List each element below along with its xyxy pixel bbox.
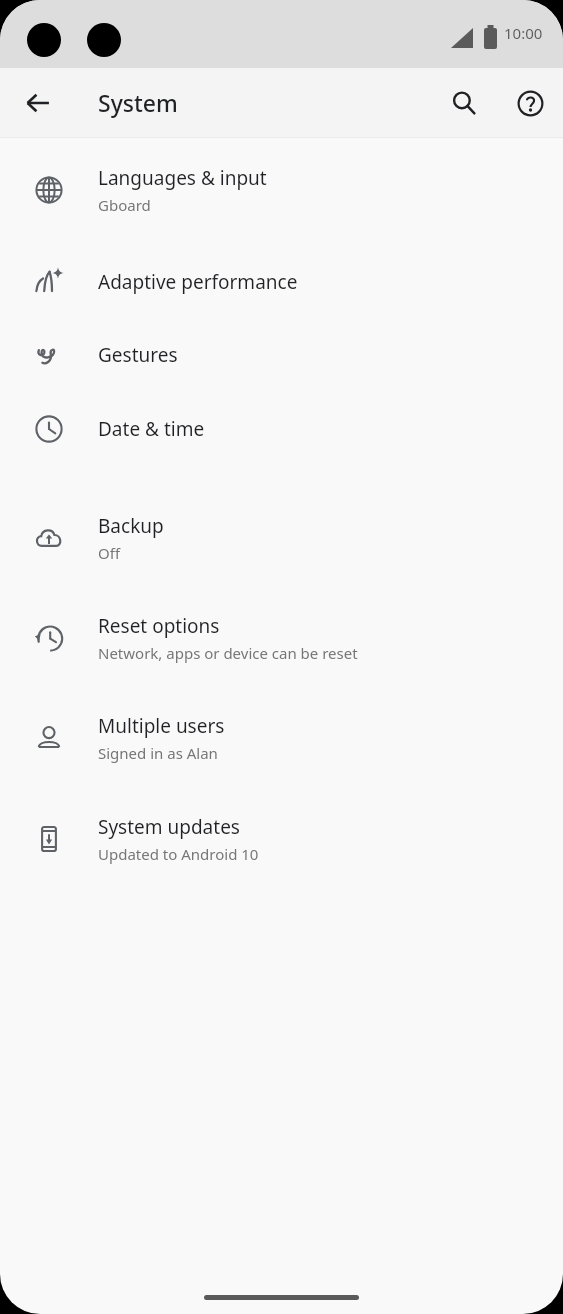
staticText: Backup [98,513,164,539]
button[interactable]: Help [506,79,554,127]
staticText: System [98,87,178,118]
staticText: Gestures [98,342,178,368]
button[interactable]: Search [440,79,488,127]
button[interactable]: Reset options [0,600,563,676]
staticText: System updates [98,814,240,840]
button[interactable]: Languages & input [0,152,563,228]
staticText: Multiple users [98,713,225,739]
button[interactable]: Back [14,79,62,127]
staticText: 10:00 [504,23,543,43]
staticText: Adaptive performance [98,269,298,295]
staticText: Languages & input [98,165,267,191]
staticText: Reset options [98,613,220,639]
button[interactable]: Date & time [0,400,563,458]
staticText: Signed in as Alan [98,743,218,763]
staticText: Date & time [98,416,205,442]
staticText: Network, apps or device can be reset [98,643,358,663]
button[interactable]: System updates [0,801,563,877]
button[interactable]: Backup [0,500,563,576]
staticText: Updated to Android 10 [98,844,259,864]
button[interactable]: Multiple users [0,700,563,776]
button[interactable]: Gestures [0,326,563,384]
button[interactable]: Adaptive performance [0,253,563,311]
staticText: Gboard [98,195,151,215]
staticText: Off [98,543,121,563]
